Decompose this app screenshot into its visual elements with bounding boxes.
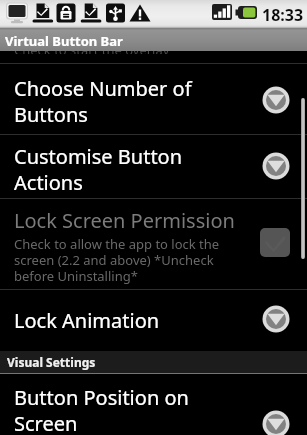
staticText: Customise Button Actions [14,143,210,196]
staticText: Button Position on Screen [14,384,210,435]
staticText: Check to start the overlay [14,51,170,54]
button[interactable]: Button Position on Screen [0,374,307,435]
button[interactable]: Customise Button Actions [0,135,307,198]
staticText: Check to allow the app to lock the scree… [14,235,225,284]
staticText: Lock Screen Permission [14,207,264,234]
button[interactable]: Expand [262,410,290,435]
button[interactable]: Expand [262,305,290,333]
staticText: 18:33 [262,4,304,26]
button[interactable]: Expand [262,86,290,114]
staticText: Virtual Button Bar [5,32,123,50]
button[interactable]: Lock Screen Permission [0,199,307,289]
button[interactable]: Lock Animation [0,290,307,351]
staticText: Choose Number of Buttons [14,75,210,128]
button[interactable]: Lock Screen Permission checkbox [260,228,290,257]
button[interactable]: Expand [262,152,290,180]
staticText: Lock Animation [14,307,210,334]
staticText: Visual Settings [7,354,96,370]
button[interactable]: Check to start the overlay [0,51,307,64]
button[interactable]: Choose Number of Buttons [0,64,307,134]
